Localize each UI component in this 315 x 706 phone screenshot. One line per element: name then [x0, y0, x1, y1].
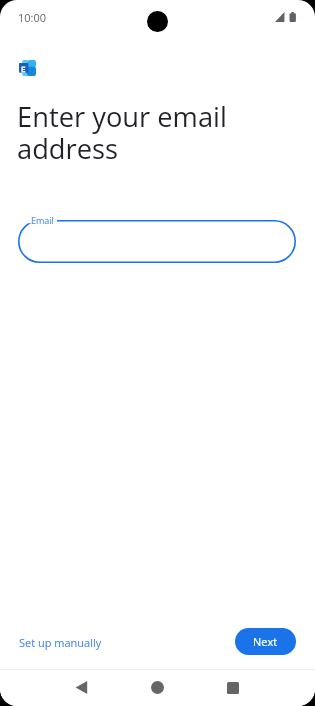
staticText: Enter your email address [17, 98, 277, 167]
button[interactable]: Recent apps [218, 672, 248, 702]
staticText: Next [253, 634, 278, 649]
button[interactable]: Next [235, 628, 296, 655]
staticText: Set up manually [19, 635, 102, 650]
button[interactable]: Set up manually [10, 630, 111, 655]
staticText: 10:00 [18, 10, 47, 25]
button[interactable]: Email [18, 220, 296, 263]
button[interactable]: Back [66, 672, 96, 702]
button[interactable]: Home [142, 672, 172, 702]
staticText: E [21, 63, 26, 74]
staticText: Email [31, 214, 54, 226]
